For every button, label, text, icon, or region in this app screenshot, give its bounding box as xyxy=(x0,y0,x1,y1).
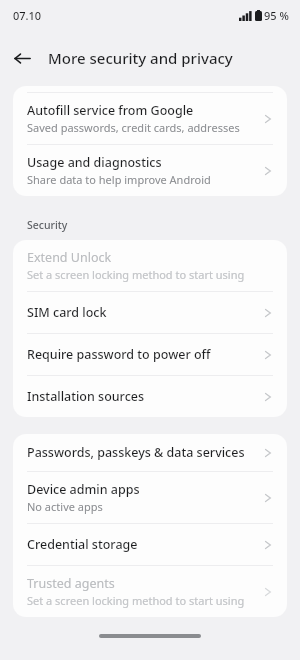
staticText: 95 % xyxy=(264,8,289,23)
staticText: Device admin apps xyxy=(27,481,140,498)
staticText: Trusted agents xyxy=(27,575,115,592)
staticText: Passwords, passkeys & data services xyxy=(27,444,245,461)
button[interactable]: Installation sources xyxy=(13,376,287,417)
staticText: Saved passwords, credit cards, addresses xyxy=(27,120,240,135)
staticText: Extend Unlock xyxy=(27,249,112,266)
staticText: SIM card lock xyxy=(27,304,107,321)
button[interactable]: SIM card lock xyxy=(13,292,287,333)
button[interactable]: Back xyxy=(0,36,44,80)
button[interactable]: Usage and diagnostics xyxy=(13,145,287,196)
staticText: Security xyxy=(27,218,68,232)
staticText: 07.10 xyxy=(13,8,42,23)
staticText: Set a screen locking method to start usi… xyxy=(27,267,245,282)
staticText: Installation sources xyxy=(27,388,145,405)
button[interactable]: Require password to power off xyxy=(13,334,287,375)
button[interactable]: Extend Unlock xyxy=(13,240,287,291)
staticText: Autofill service from Google xyxy=(27,102,194,119)
staticText: No active apps xyxy=(27,499,103,514)
staticText: Set a screen locking method to start usi… xyxy=(27,593,245,608)
button[interactable]: Passwords, passkeys & data services xyxy=(13,434,287,471)
staticText: Credential storage xyxy=(27,536,138,553)
button[interactable]: Device admin apps xyxy=(13,472,287,523)
button[interactable]: Credential storage xyxy=(13,524,287,565)
button[interactable]: Autofill service from Google xyxy=(13,93,287,144)
staticText: Usage and diagnostics xyxy=(27,154,162,171)
staticText: Require password to power off xyxy=(27,346,211,363)
staticText: Share data to help improve Android xyxy=(27,172,211,187)
staticText: More security and privacy xyxy=(48,48,233,68)
button[interactable]: Trusted agents xyxy=(13,566,287,617)
